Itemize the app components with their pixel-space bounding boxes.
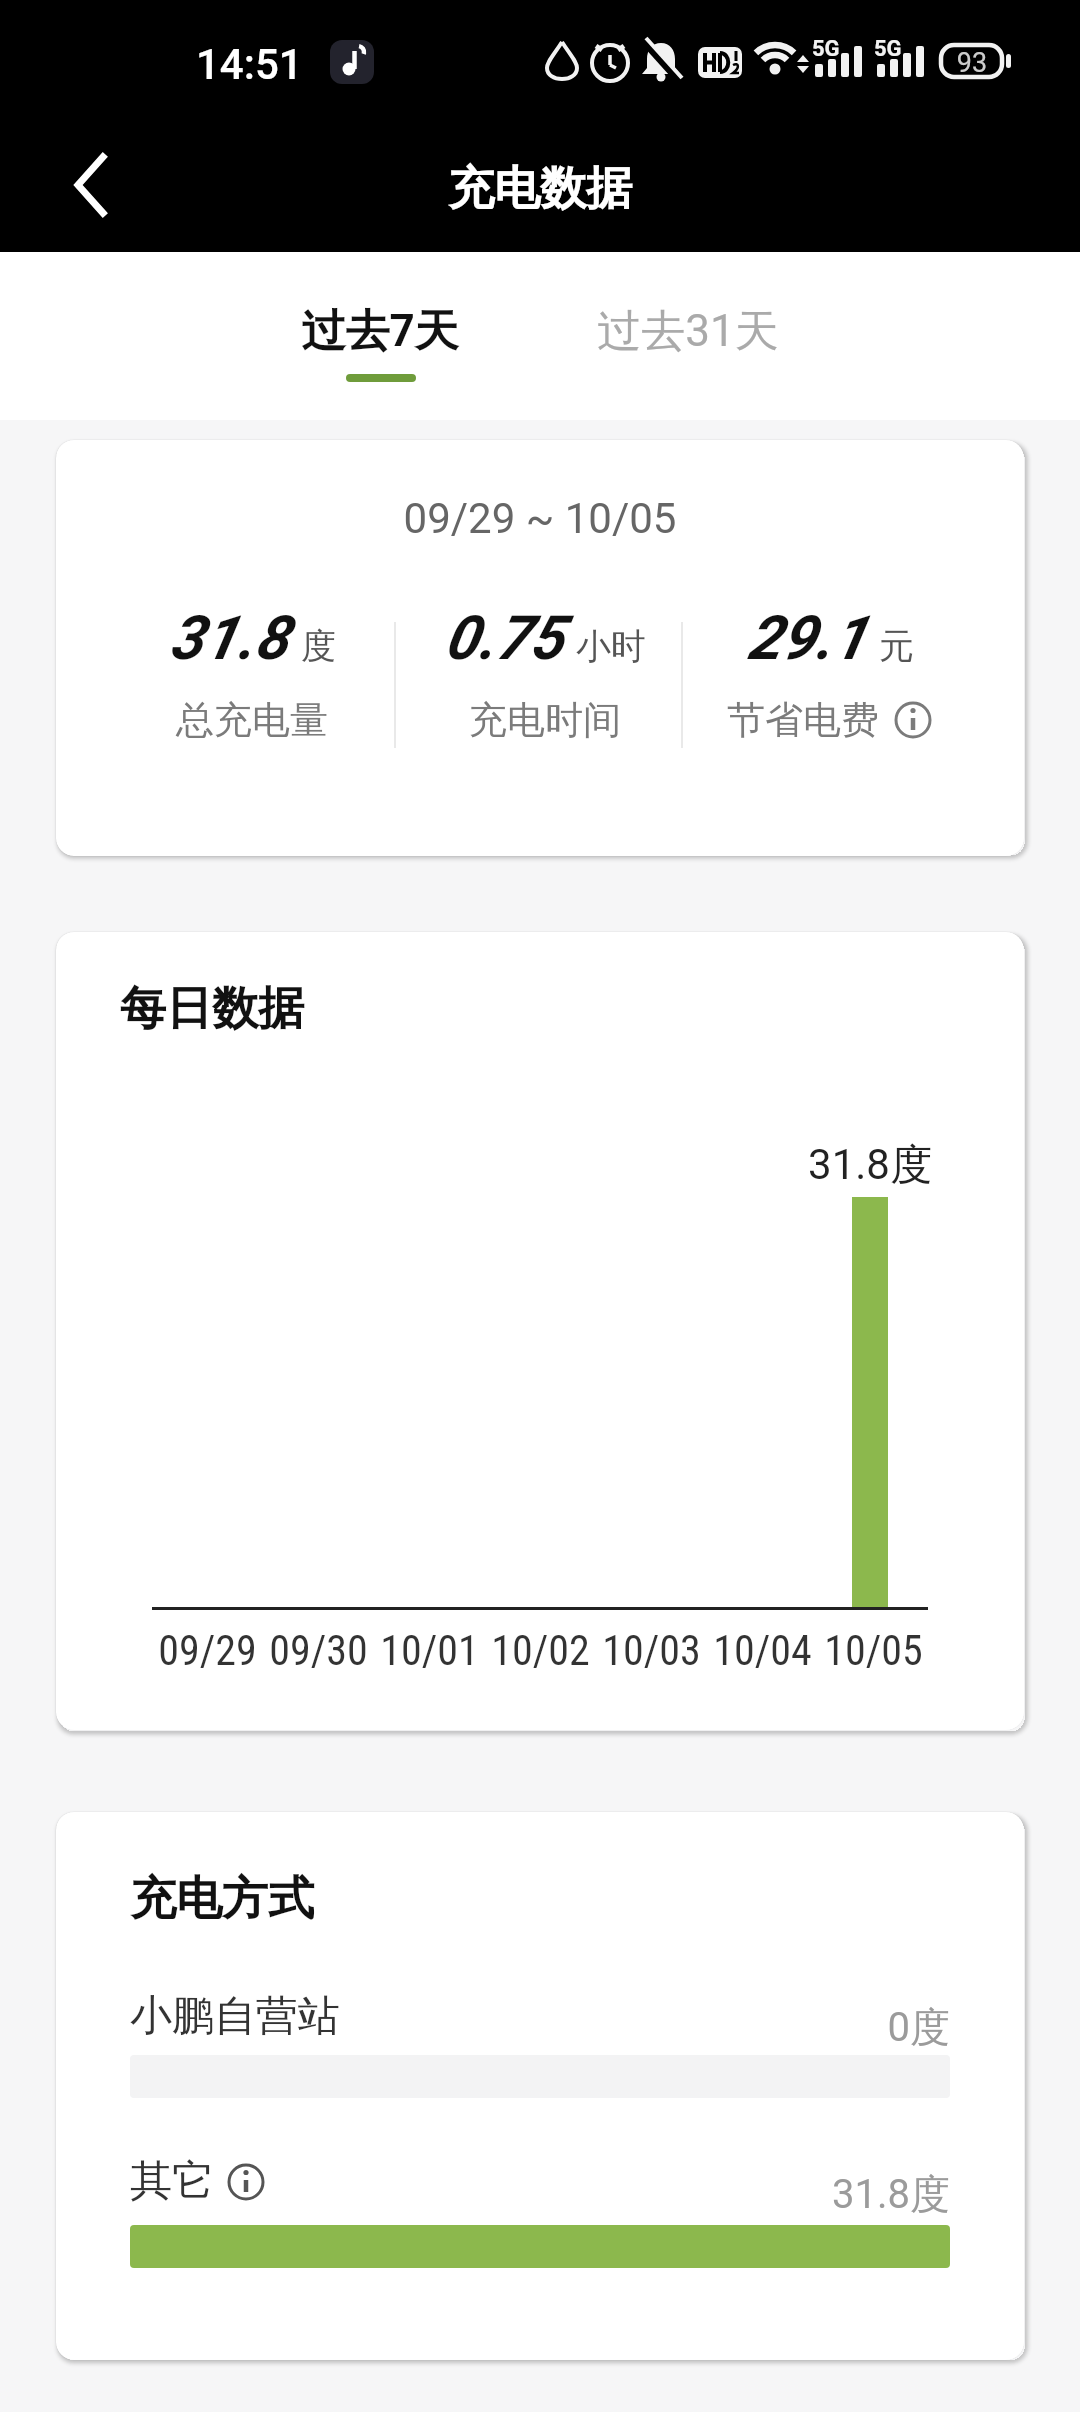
staticText: 5G [874,36,902,62]
button[interactable]: 过去7天 [250,252,510,420]
staticText: 10/02 [485,1626,596,1675]
staticText: 93 [947,47,997,79]
staticText: 0.75 [444,602,564,673]
staticText: 充电方式 [130,1870,314,1928]
staticText: 09/29 [152,1626,263,1675]
button[interactable]: 过去31天 [558,252,818,420]
button[interactable] [893,700,933,740]
button[interactable] [30,130,150,240]
staticText: 充电数据 [0,160,1080,218]
staticText: 10/04 [707,1626,818,1675]
staticText: 10/01 [374,1626,485,1675]
staticText: 节省电费 [727,696,879,744]
staticText: 过去7天 [250,304,510,359]
staticText: 小时 [576,624,646,668]
staticText: 29.1 [747,602,867,673]
staticText: 每日数据 [120,980,304,1038]
staticText: 31.8 [169,602,289,673]
button[interactable] [226,2162,266,2202]
staticText: 14:51 [196,40,303,89]
staticText: 过去31天 [558,304,818,359]
staticText: 09/30 [263,1626,374,1675]
staticText: 10/03 [596,1626,707,1675]
staticText: 小鹏自营站 [130,1990,340,2043]
staticText: 度 [301,624,336,668]
staticText: 31.8度 [760,1139,980,1192]
staticText: 总充电量 [176,696,328,744]
staticText: 09/29 ~ 10/05 [56,494,1024,543]
staticText: 元 [879,624,914,668]
staticText: 31.8度 [650,2169,950,2219]
staticText: 10/05 [818,1626,929,1675]
staticText: 5G [812,36,840,62]
staticText: 充电时间 [469,696,621,744]
staticText: 0度 [650,2002,950,2052]
staticText: 其它 [130,2155,214,2208]
